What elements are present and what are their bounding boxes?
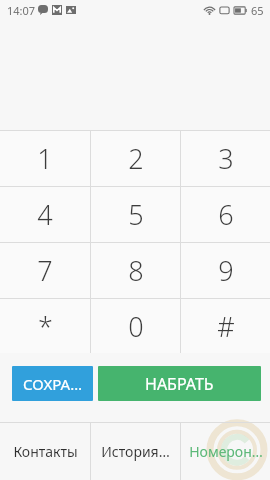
button[interactable]: 0 bbox=[91, 299, 180, 353]
button[interactable]: 5 bbox=[91, 187, 180, 242]
staticText: 6 bbox=[218, 196, 234, 233]
button[interactable]: 3 bbox=[181, 131, 270, 186]
staticText: 5 bbox=[128, 196, 144, 233]
staticText: 1 bbox=[37, 140, 53, 177]
staticText: 14:07 bbox=[7, 3, 36, 18]
staticText: Контакты bbox=[13, 442, 78, 461]
staticText: 4 bbox=[37, 196, 53, 233]
staticText: История… bbox=[101, 442, 170, 461]
staticText: 8 bbox=[128, 252, 144, 289]
staticText: 2 bbox=[128, 140, 144, 177]
button[interactable]: Контакты bbox=[0, 422, 90, 480]
button[interactable]: 7 bbox=[0, 243, 90, 298]
button[interactable]: НАБРАТЬ bbox=[98, 366, 261, 401]
button[interactable]: 8 bbox=[91, 243, 180, 298]
staticText: НАБРАТЬ bbox=[145, 373, 214, 395]
staticText: Номерон… bbox=[189, 442, 263, 461]
button[interactable]: * bbox=[0, 299, 90, 353]
button[interactable]: 2 bbox=[91, 131, 180, 186]
staticText: * bbox=[38, 308, 53, 345]
staticText: 65 bbox=[251, 3, 264, 18]
button[interactable]: Номерон… bbox=[181, 422, 270, 480]
button[interactable]: СОХРА… bbox=[12, 366, 93, 401]
staticText: 7 bbox=[37, 252, 53, 289]
button[interactable]: 6 bbox=[181, 187, 270, 242]
button[interactable]: 1 bbox=[0, 131, 90, 186]
button[interactable]: # bbox=[181, 299, 270, 353]
staticText: 0 bbox=[128, 308, 144, 345]
staticText: СОХРА… bbox=[23, 374, 82, 394]
staticText: # bbox=[217, 308, 235, 345]
button[interactable]: 4 bbox=[0, 187, 90, 242]
staticText: 9 bbox=[218, 252, 234, 289]
staticText: 3 bbox=[218, 140, 234, 177]
button[interactable]: История… bbox=[91, 422, 180, 480]
button[interactable]: 9 bbox=[181, 243, 270, 298]
